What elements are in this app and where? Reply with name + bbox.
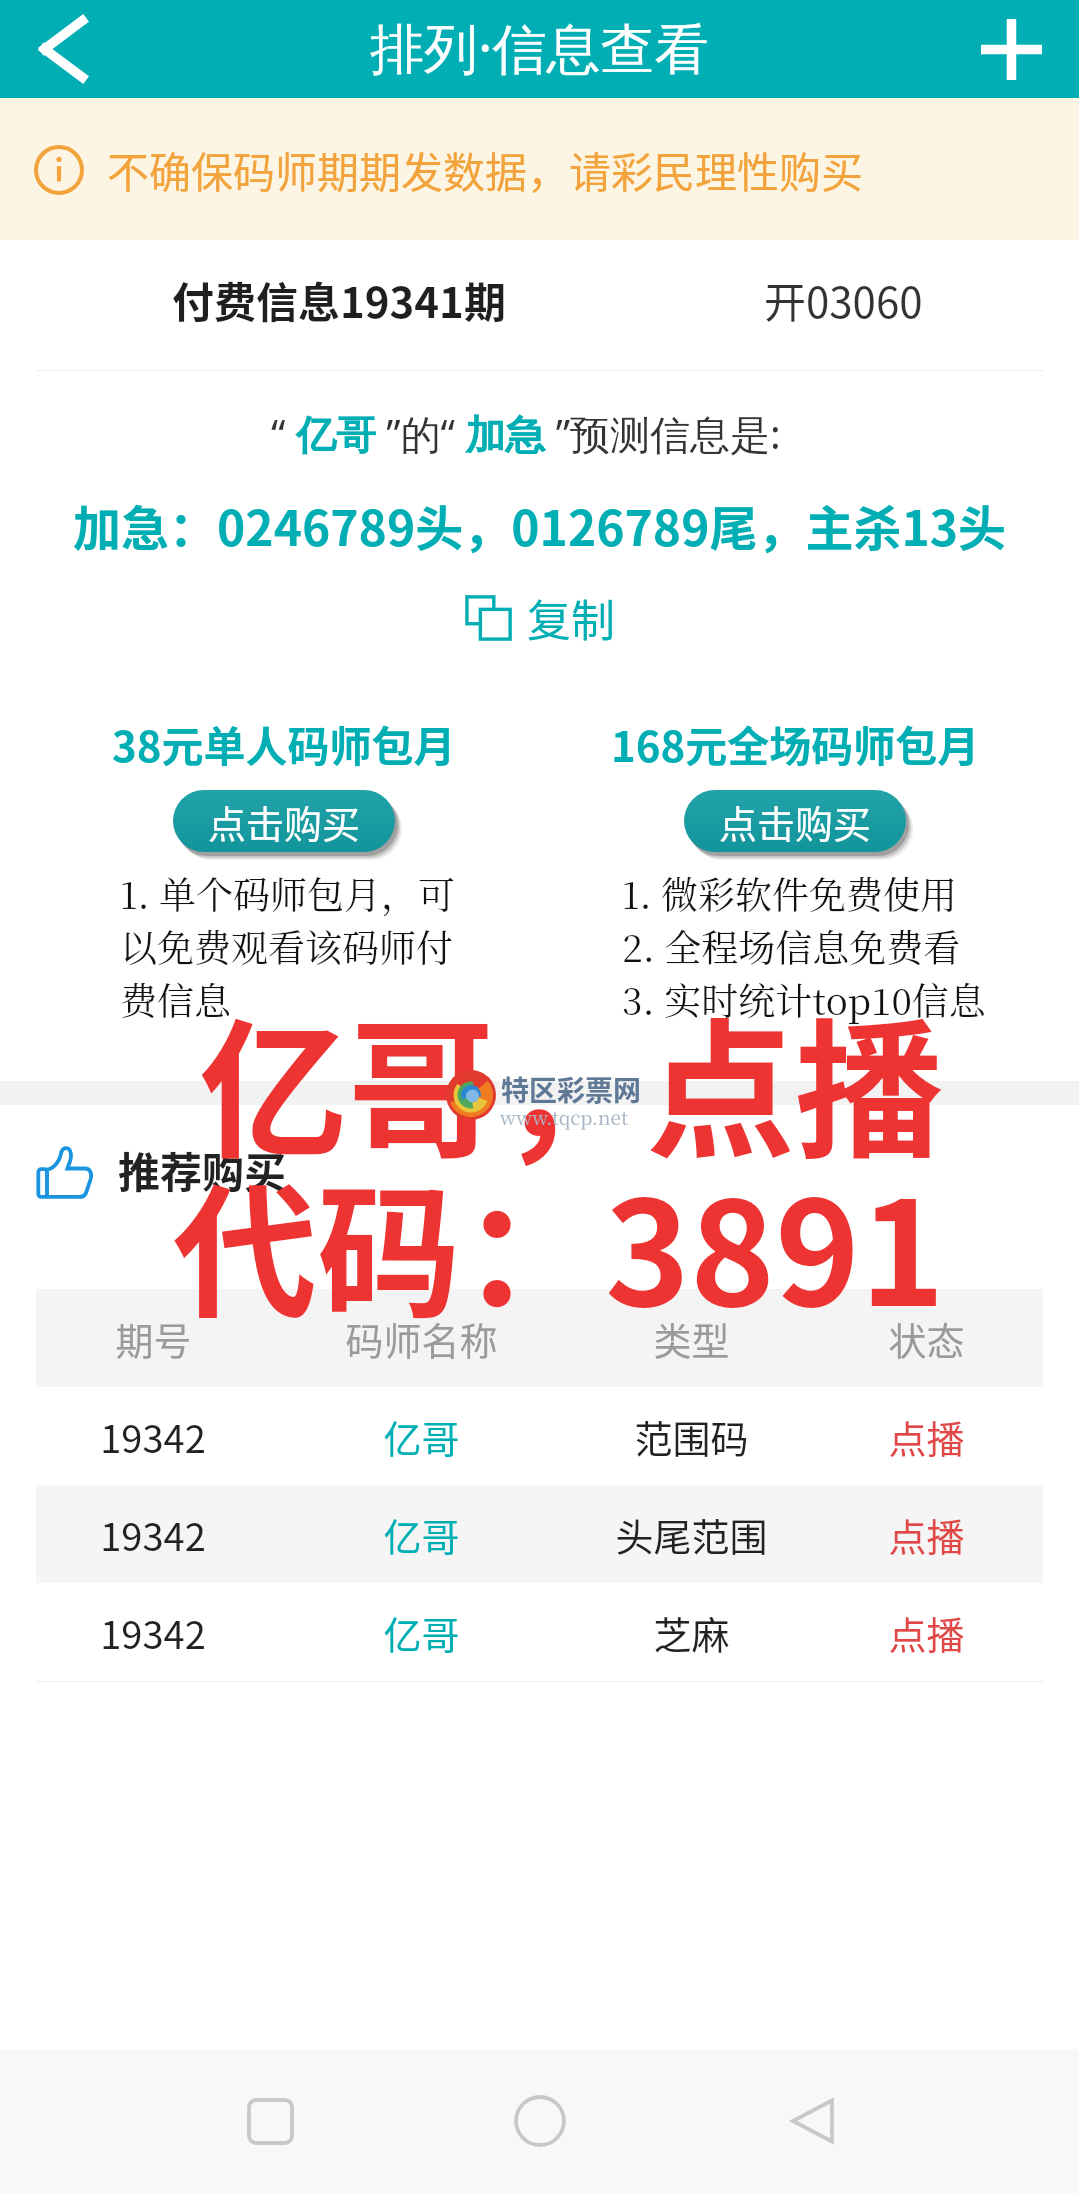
staticText: 推荐购买 — [118, 1139, 287, 1200]
staticText: 点播 — [888, 1409, 965, 1464]
staticText: 点击购买 — [719, 794, 872, 849]
button[interactable]: 19342 — [36, 1387, 1043, 1485]
staticText: 费信息 — [120, 972, 231, 1025]
staticText: 38元单人码师包月 — [112, 713, 456, 774]
staticText: 加急：0246789头，0126789尾，主杀13头 — [73, 490, 1007, 560]
button[interactable]: 点击购买 — [173, 790, 395, 852]
staticText: 范围码 — [634, 1409, 749, 1464]
staticText: 复制 — [527, 586, 615, 650]
staticText: 亿哥 — [383, 1605, 460, 1660]
staticText: 类型 — [653, 1311, 730, 1366]
staticText: 芝麻 — [653, 1605, 730, 1660]
staticText: 状态 — [888, 1311, 965, 1366]
staticText: 2. 全程场信息免费看 — [622, 919, 961, 972]
staticText: 亿哥，点播 — [199, 972, 944, 1188]
staticText: 代码：3891 — [173, 1139, 945, 1348]
staticText: 1. 微彩软件免费使用 — [622, 866, 957, 919]
staticText: 点播 — [888, 1507, 965, 1562]
staticText: 168元全场码师包月 — [611, 713, 980, 774]
staticText: 码师名称 — [345, 1311, 498, 1366]
staticText: 亿哥 — [383, 1507, 460, 1562]
button[interactable]: Back — [765, 2073, 861, 2169]
staticText: www.tqcp.net — [500, 1103, 628, 1130]
staticText: “ 亿哥 ”的“ 加急 ”预测信息是: — [271, 406, 781, 461]
staticText: 19342 — [100, 1409, 206, 1464]
button[interactable]: Recents — [222, 2073, 318, 2169]
staticText: 19342 — [100, 1605, 206, 1660]
button[interactable]: Home — [492, 2073, 588, 2169]
staticText: 1. 单个码师包月，可 — [120, 866, 455, 919]
button[interactable]: Add — [962, 0, 1060, 98]
staticText: 特区彩票网 — [501, 1069, 642, 1110]
button[interactable]: Back — [6, 0, 120, 98]
staticText: 不确保码师期期发数据，请彩民理性购买 — [107, 139, 864, 200]
button[interactable]: 19342 — [36, 1583, 1043, 1681]
staticText: 开03060 — [764, 269, 923, 330]
button[interactable]: 点击购买 — [684, 790, 906, 852]
button[interactable]: 复制 — [451, 582, 629, 654]
staticText: 付费信息19341期 — [172, 269, 506, 330]
staticText: 点击购买 — [208, 794, 361, 849]
staticText: 亿哥 — [383, 1409, 460, 1464]
button[interactable]: 19342 — [36, 1485, 1043, 1583]
staticText: 点播 — [888, 1605, 965, 1660]
staticText: 期号 — [115, 1311, 192, 1366]
staticText: 头尾范围 — [615, 1507, 768, 1562]
staticText: 排列·信息查看 — [370, 10, 709, 84]
staticText: 以免费观看该码师付 — [120, 919, 453, 972]
staticText: 19342 — [100, 1507, 206, 1562]
staticText: 3. 实时统计top10信息 — [622, 972, 986, 1025]
